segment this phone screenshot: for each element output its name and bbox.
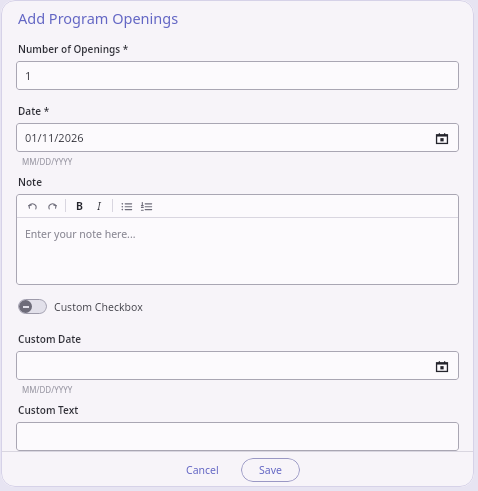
staticText: B bbox=[76, 199, 83, 213]
staticText: MM/DD/YYYY bbox=[22, 156, 73, 167]
other: Open calendar bbox=[434, 130, 450, 146]
button[interactable]: Enter your note here... bbox=[16, 218, 459, 285]
other: Custom Checkbox toggle bbox=[18, 299, 47, 314]
staticText: Custom Date bbox=[18, 332, 82, 346]
staticText: Custom Checkbox bbox=[54, 300, 143, 314]
button[interactable]: Save bbox=[241, 458, 300, 482]
button[interactable]: Bulleted list bbox=[116, 196, 136, 216]
staticText: Add Program Openings bbox=[18, 8, 179, 28]
button[interactable]: Redo bbox=[42, 196, 62, 216]
other: Open calendar bbox=[434, 358, 450, 374]
staticText: I bbox=[97, 199, 101, 213]
button[interactable]: Italic bbox=[89, 196, 109, 216]
staticText: Date * bbox=[18, 104, 50, 118]
button[interactable] bbox=[16, 422, 459, 451]
staticText: MM/DD/YYYY bbox=[22, 384, 73, 395]
staticText: Enter your note here... bbox=[25, 227, 136, 241]
button[interactable]: Undo bbox=[22, 196, 42, 216]
staticText: 1 bbox=[25, 68, 32, 83]
staticText: Save bbox=[259, 463, 282, 477]
button[interactable]: Cancel bbox=[176, 458, 229, 482]
staticText: Cancel bbox=[186, 463, 219, 477]
button[interactable]: 01/11/2026 bbox=[16, 123, 459, 152]
staticText: Note bbox=[18, 175, 43, 189]
staticText: Custom Text bbox=[18, 403, 79, 417]
button[interactable]: Bold bbox=[69, 196, 89, 216]
staticText: Number of Openings * bbox=[18, 42, 129, 56]
button[interactable]: Numbered list bbox=[136, 196, 156, 216]
button[interactable]: 1 bbox=[16, 61, 459, 90]
staticText: 01/11/2026 bbox=[25, 130, 84, 145]
button[interactable]: Open calendar bbox=[16, 351, 459, 380]
button[interactable]: Custom Checkbox toggle bbox=[16, 297, 145, 316]
